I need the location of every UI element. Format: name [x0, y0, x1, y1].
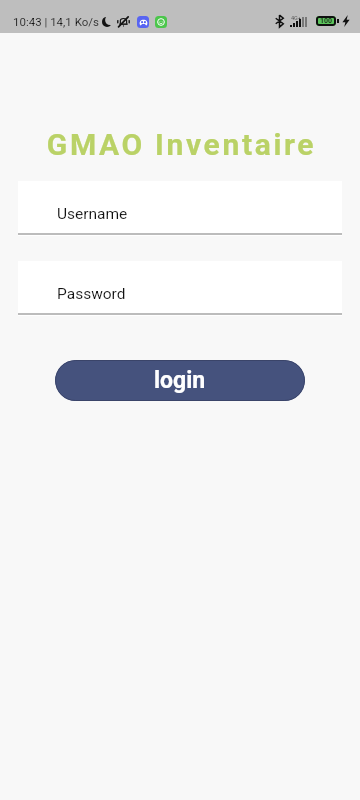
staticText: 10:43 | 14,1 Ko/s: [13, 15, 99, 28]
staticText: GMAO Inventaire: [3, 127, 360, 162]
staticText: Password: [57, 285, 126, 303]
staticText: login: [154, 367, 206, 394]
button[interactable]: Password: [18, 261, 342, 316]
staticText: 4G+: [291, 15, 301, 21]
button[interactable]: login: [55, 360, 305, 401]
staticText: 100: [320, 17, 333, 25]
button[interactable]: Username: [18, 181, 342, 236]
staticText: Username: [57, 205, 128, 223]
